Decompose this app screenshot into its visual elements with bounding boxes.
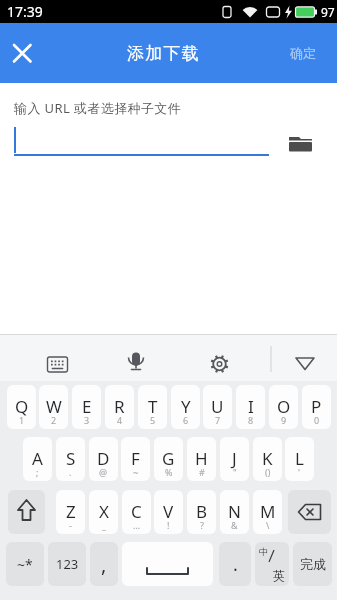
staticText: I <box>248 395 254 418</box>
staticText: ' <box>298 466 301 478</box>
staticText: - <box>69 519 72 531</box>
button[interactable] <box>0 335 337 381</box>
button[interactable]: W <box>39 385 68 429</box>
button[interactable]: L <box>285 437 314 481</box>
button[interactable]: M <box>253 490 282 534</box>
button[interactable]: ~* <box>6 542 44 586</box>
button[interactable]: 中 <box>255 542 289 586</box>
staticText: 6 <box>183 414 189 426</box>
staticText: ~ <box>133 466 139 478</box>
staticText: B <box>196 500 208 523</box>
button[interactable]: Y <box>171 385 200 429</box>
button[interactable]: 123 <box>48 542 86 586</box>
staticText: R <box>114 395 125 418</box>
button[interactable]: . <box>219 542 251 586</box>
button[interactable]: B <box>187 490 216 534</box>
button[interactable]: 完成 <box>293 542 332 586</box>
staticText: Y <box>181 395 191 418</box>
staticText: … <box>133 519 141 531</box>
staticText: # <box>199 466 205 478</box>
button[interactable]: Q <box>7 385 36 429</box>
staticText: , <box>101 551 107 578</box>
staticText: X <box>99 500 109 523</box>
button[interactable]: E <box>72 385 101 429</box>
staticText: U <box>211 395 224 418</box>
button[interactable]: D <box>89 437 118 481</box>
button[interactable]: J <box>220 437 249 481</box>
button[interactable]: O <box>269 385 298 429</box>
staticText: . <box>69 466 72 478</box>
staticText: 17:39 <box>7 2 43 21</box>
button[interactable]: P <box>302 385 331 429</box>
button[interactable] <box>285 128 317 158</box>
staticText: J <box>232 447 237 470</box>
staticText: () <box>265 466 271 478</box>
button[interactable]: F <box>121 437 150 481</box>
staticText: L <box>295 447 304 470</box>
staticText: N <box>228 500 241 523</box>
button[interactable]: S <box>56 437 85 481</box>
button[interactable]: 确定 <box>290 23 337 83</box>
staticText: A <box>32 447 43 470</box>
staticText: 7 <box>215 414 221 426</box>
staticText: O <box>277 395 291 418</box>
button[interactable]: T <box>138 385 167 429</box>
button[interactable]: V <box>154 490 183 534</box>
button[interactable] <box>288 490 331 534</box>
button[interactable]: N <box>220 490 249 534</box>
staticText: % <box>165 466 173 478</box>
staticText: ! <box>167 519 170 531</box>
staticText: S <box>66 447 76 470</box>
button[interactable]: G <box>154 437 183 481</box>
staticText: 确定 <box>290 45 316 61</box>
staticText: K <box>262 447 273 470</box>
staticText: T <box>148 395 158 418</box>
button[interactable]: K <box>253 437 282 481</box>
button[interactable]: Z <box>56 490 85 534</box>
staticText: _ <box>102 519 106 531</box>
button[interactable]: I <box>236 385 265 429</box>
staticText: M <box>260 500 276 523</box>
staticText: 4 <box>117 414 123 426</box>
button[interactable]: X <box>89 490 118 534</box>
staticText: G <box>162 447 175 470</box>
staticText: & <box>231 519 238 531</box>
button[interactable] <box>122 542 213 586</box>
staticText: P <box>311 395 322 418</box>
staticText: ; <box>36 466 39 478</box>
staticText: 0 <box>314 414 320 426</box>
staticText: Z <box>66 500 76 523</box>
staticText: V <box>163 500 174 523</box>
staticText: 英 <box>273 568 285 583</box>
staticText: C <box>131 500 142 523</box>
staticText: F <box>131 447 140 470</box>
staticText: 97 <box>321 4 335 20</box>
staticText: 9 <box>281 414 287 426</box>
button[interactable] <box>8 490 45 534</box>
staticText: E <box>82 395 92 418</box>
staticText: 输入 URL 或者选择种子文件 <box>14 99 182 117</box>
staticText: \ <box>266 519 270 531</box>
staticText: H <box>195 447 208 470</box>
button[interactable] <box>0 23 44 83</box>
button[interactable]: R <box>105 385 134 429</box>
staticText: ? <box>200 519 204 531</box>
staticText: " <box>233 466 237 478</box>
staticText: Q <box>15 395 29 418</box>
staticText: W <box>46 395 62 418</box>
staticText: @ <box>99 466 108 478</box>
button[interactable]: A <box>23 437 52 481</box>
staticText: 8 <box>248 414 254 426</box>
staticText: 5 <box>150 414 156 426</box>
staticText: 3 <box>84 414 90 426</box>
button[interactable]: C <box>122 490 151 534</box>
staticText: 完成 <box>300 556 326 572</box>
button[interactable]: U <box>203 385 232 429</box>
staticText: 2 <box>51 414 57 426</box>
staticText: 123 <box>56 555 79 573</box>
staticText: 中 <box>259 546 268 557</box>
staticText: 添加下载 <box>127 43 200 64</box>
button[interactable]: , <box>90 542 118 586</box>
staticText: ~* <box>17 555 33 574</box>
button[interactable]: H <box>187 437 216 481</box>
